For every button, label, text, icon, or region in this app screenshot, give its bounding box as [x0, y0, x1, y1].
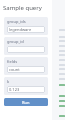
staticText: legendware	[9, 27, 32, 32]
button[interactable]: group_id	[4, 37, 48, 55]
staticText: k	[7, 79, 10, 84]
staticText: count	[9, 67, 20, 72]
staticText: 0.123	[9, 87, 20, 92]
button[interactable]: fields	[4, 57, 48, 75]
staticText: Run	[22, 100, 30, 105]
staticText: Sample query	[3, 4, 42, 12]
staticText: group_id	[7, 39, 24, 44]
button[interactable]: k	[4, 77, 48, 95]
button[interactable]: group_ids	[4, 17, 48, 35]
staticText: group_ids	[7, 19, 26, 24]
staticText: fields	[7, 59, 18, 64]
button[interactable]: Run	[4, 98, 48, 106]
